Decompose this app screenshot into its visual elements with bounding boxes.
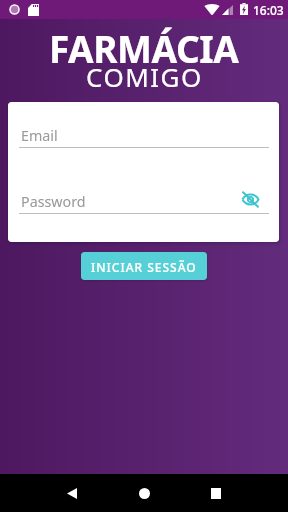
staticText: INICIAR SESSÃO [91, 259, 197, 275]
button[interactable]: Home [120, 474, 168, 512]
staticText: COMIGO [86, 59, 203, 94]
button[interactable]: Toggle password visibility [240, 189, 260, 209]
staticText: FARMÁCIA [49, 23, 239, 73]
button[interactable]: INICIAR SESSÃO [81, 252, 207, 280]
staticText: Email [21, 126, 271, 145]
staticText: Password [21, 192, 251, 211]
button[interactable]: Back [48, 474, 96, 512]
staticText: 16:03 [253, 2, 284, 18]
button[interactable]: Recent apps [192, 474, 240, 512]
